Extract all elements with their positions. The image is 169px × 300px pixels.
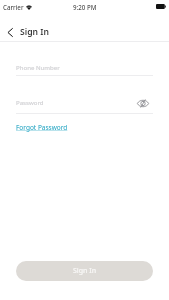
button[interactable]: Sign In [16,261,153,281]
staticText: Password [16,98,44,106]
staticText: 9:20 PM [73,3,97,11]
staticText: Forgot Password [16,123,68,132]
button[interactable]: Show password [136,97,149,110]
button[interactable]: Forgot Password [16,122,68,133]
staticText: Phone Number [16,63,60,71]
staticText: Carrier [3,3,24,11]
button[interactable]: Back [0,22,55,42]
staticText: Sign In [20,26,49,38]
staticText: Sign In [73,266,97,276]
